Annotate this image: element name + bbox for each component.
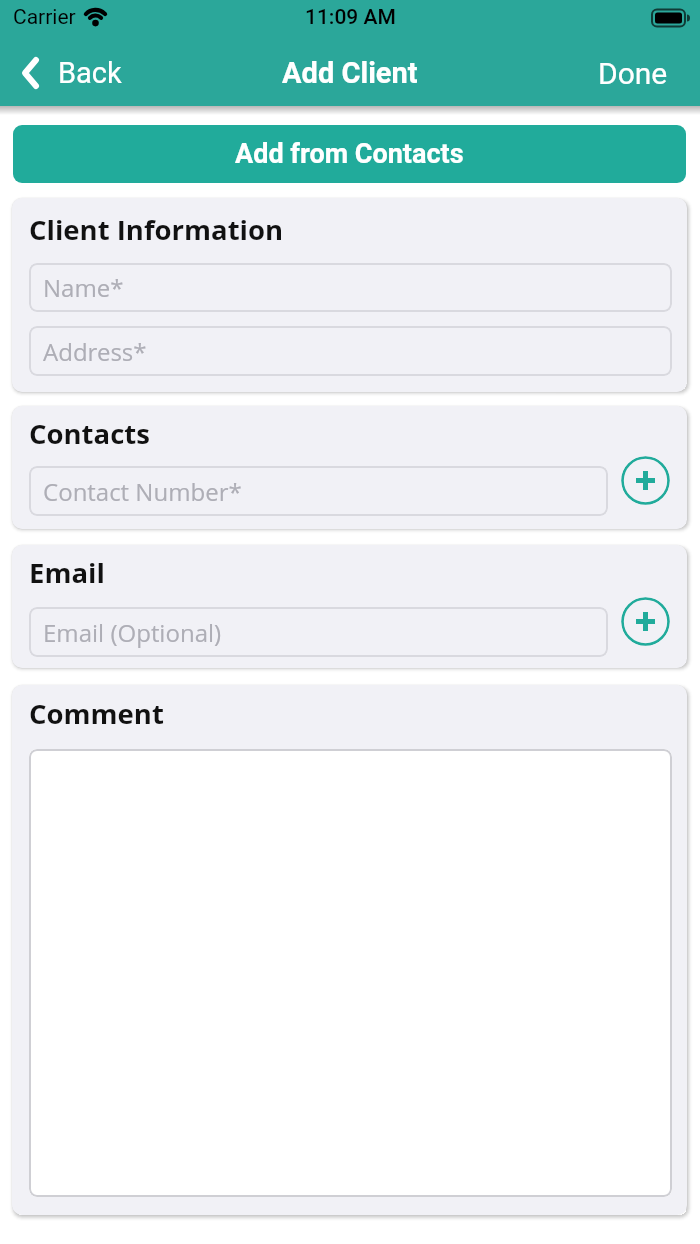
- button[interactable]: Done: [598, 56, 668, 91]
- button[interactable]: Name*: [29, 263, 672, 312]
- staticText: Carrier: [13, 5, 76, 30]
- button[interactable]: [621, 456, 670, 505]
- staticText: Address*: [43, 335, 147, 368]
- staticText: Email: [29, 554, 105, 591]
- button[interactable]: Email (Optional): [29, 607, 608, 657]
- staticText: Comment: [29, 695, 164, 732]
- button[interactable]: Address*: [29, 326, 672, 376]
- staticText: Back: [58, 56, 122, 90]
- staticText: Contact Number*: [43, 475, 242, 508]
- staticText: Add from Contacts: [235, 138, 464, 170]
- staticText: Contacts: [29, 415, 150, 452]
- button[interactable]: Add from Contacts: [13, 125, 686, 183]
- button[interactable]: Contact Number*: [29, 466, 608, 516]
- button[interactable]: Back: [22, 56, 122, 90]
- button[interactable]: [621, 597, 670, 646]
- staticText: 11:09 AM: [305, 5, 396, 30]
- staticText: Client Information: [29, 211, 284, 248]
- staticText: Name*: [43, 271, 124, 304]
- staticText: Email (Optional): [43, 616, 222, 649]
- staticText: Add Client: [282, 56, 418, 90]
- staticText: Done: [598, 56, 668, 91]
- button[interactable]: [29, 749, 672, 1197]
